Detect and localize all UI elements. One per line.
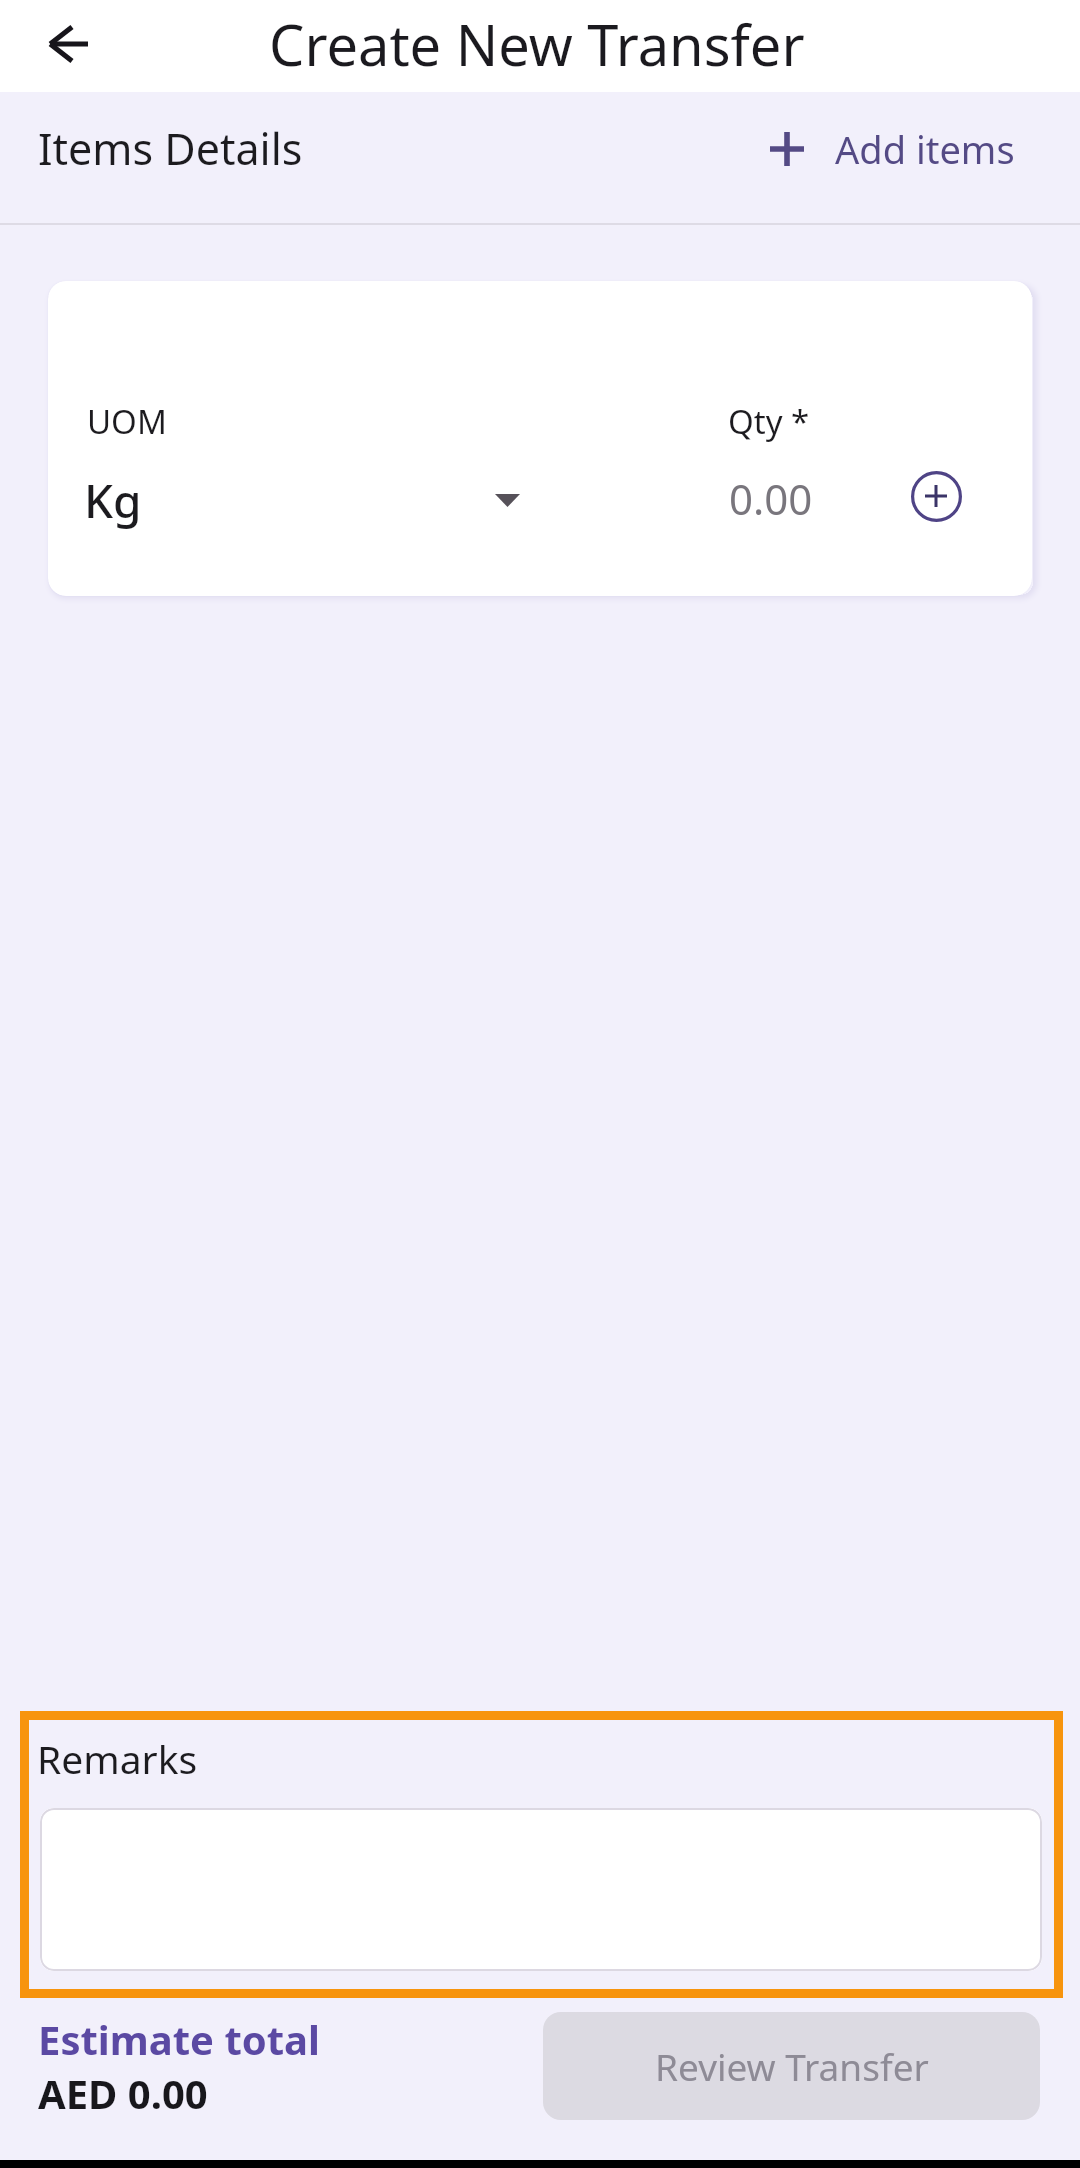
- button[interactable]: Select unit of measure: [459, 452, 555, 548]
- button[interactable]: Review Transfer: [543, 2012, 1040, 2120]
- staticText: Qty *: [728, 399, 810, 444]
- staticText: Kg: [84, 469, 142, 532]
- staticText: Add items: [835, 123, 1015, 175]
- staticText: Review Transfer: [655, 2041, 929, 2091]
- staticText: 0.00: [729, 470, 813, 527]
- staticText: UOM: [87, 399, 167, 444]
- staticText: Items Details: [38, 119, 303, 178]
- button[interactable]: [40, 1808, 1042, 1971]
- staticText: Estimate total: [38, 2012, 320, 2066]
- staticText: Create New Transfer: [269, 6, 805, 82]
- staticText: Remarks: [37, 1732, 198, 1785]
- button[interactable]: Add quantity: [888, 448, 984, 544]
- button[interactable]: 0.00: [729, 463, 869, 531]
- button[interactable]: Back: [21, 0, 117, 90]
- staticText: AED 0.00: [38, 2066, 208, 2120]
- button[interactable]: Add items: [770, 111, 1015, 187]
